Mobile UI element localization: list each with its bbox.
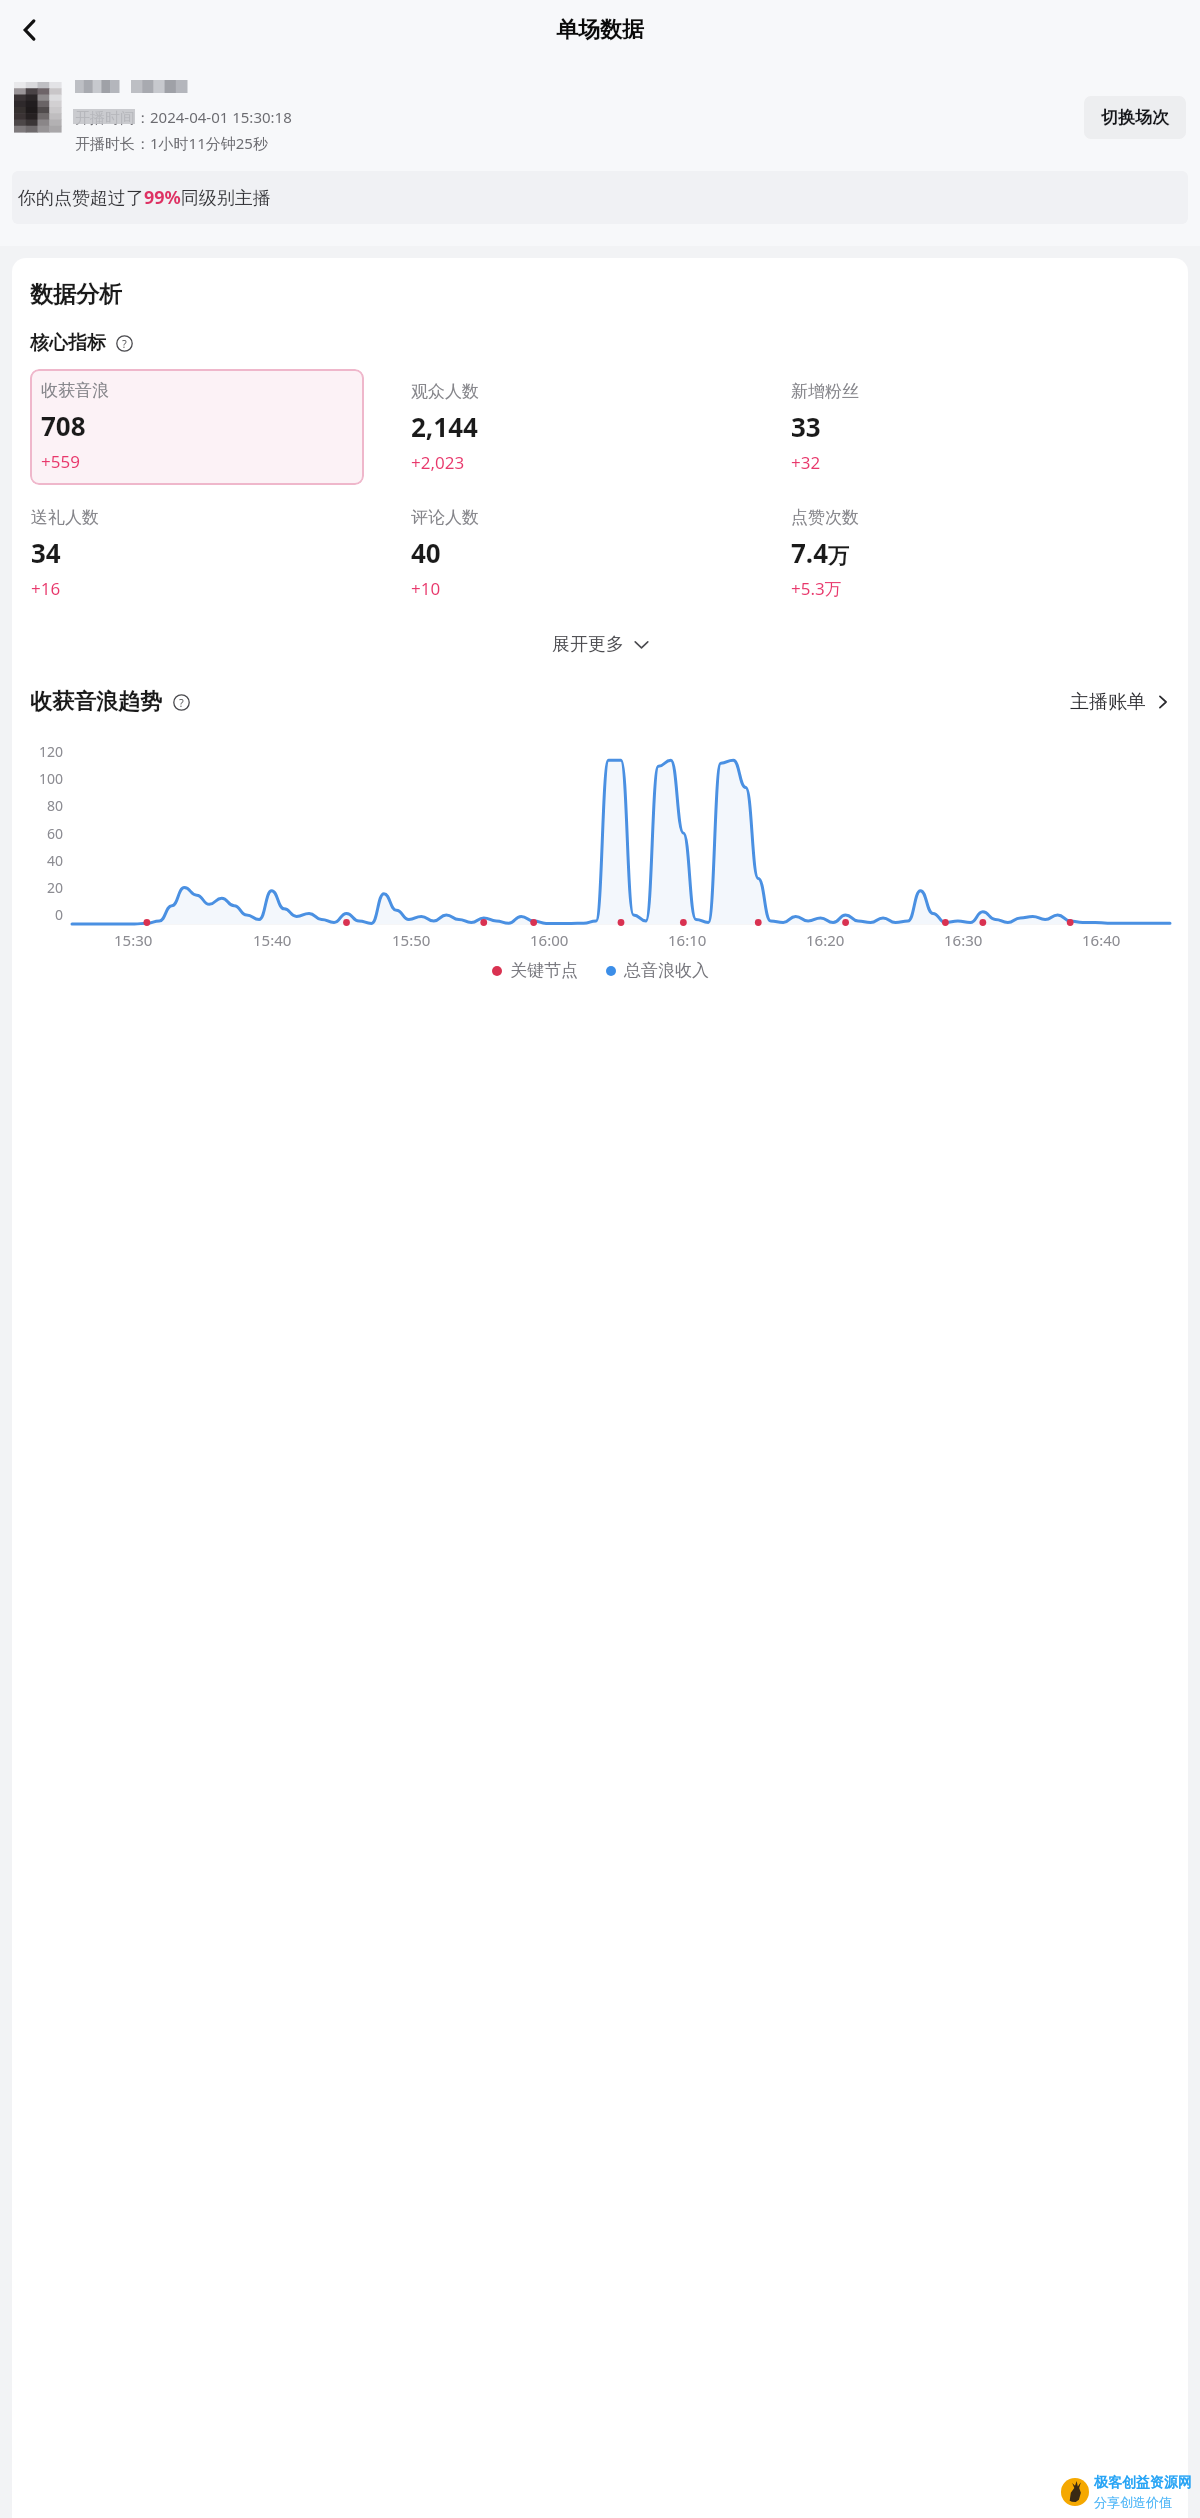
staticText: +5.3万	[791, 577, 842, 600]
button[interactable]: 点赞次数	[790, 495, 1170, 613]
staticText: 16:10	[668, 930, 707, 950]
staticText: 34	[31, 535, 61, 570]
button[interactable]: 切换场次	[1084, 96, 1186, 139]
staticText: 点赞次数	[791, 507, 859, 528]
staticText: +32	[791, 451, 821, 474]
staticText: 主播账单	[1070, 690, 1146, 714]
staticText: 收获音浪	[41, 380, 109, 401]
staticText: 总音浪收入	[624, 960, 709, 981]
staticText: +16	[31, 577, 61, 600]
button[interactable]: 收获音浪	[30, 369, 364, 485]
staticText: 0	[55, 905, 64, 924]
button[interactable]: 新增粉丝	[790, 369, 1170, 487]
staticText: 20	[47, 878, 64, 897]
staticText: 33	[791, 409, 821, 444]
staticText: ?	[122, 336, 127, 351]
button[interactable]: 主播账单	[1070, 684, 1170, 720]
staticText: 展开更多	[552, 633, 624, 656]
staticText: 开播时间：2024-04-01 15:30:18	[75, 107, 292, 127]
button[interactable]: Back	[6, 6, 54, 54]
button[interactable]: 展开更多	[538, 625, 663, 664]
staticText: 单场数据	[556, 16, 644, 44]
staticText: 数据分析	[30, 280, 122, 309]
staticText: 极客创益资源网	[1094, 2474, 1192, 2492]
staticText: 观众人数	[411, 381, 479, 402]
staticText: 708	[41, 408, 86, 443]
staticText: 16:00	[530, 930, 569, 950]
staticText: 15:50	[392, 930, 431, 950]
staticText: 你的点赞超过了99%同级别主播	[18, 185, 271, 210]
staticText: 15:30	[114, 930, 153, 950]
button[interactable]: Info	[170, 691, 192, 713]
staticText: 40	[411, 535, 441, 570]
staticText: 分享创造价值	[1094, 2494, 1172, 2510]
button[interactable]: Info	[113, 332, 135, 354]
button[interactable]: 观众人数	[410, 369, 790, 487]
staticText: 核心指标	[30, 331, 106, 355]
staticText: 新增粉丝	[791, 381, 859, 402]
staticText: 80	[47, 796, 64, 815]
staticText: 60	[47, 824, 64, 843]
staticText: 16:20	[806, 930, 845, 950]
staticText: ?	[179, 695, 184, 710]
staticText: 16:40	[1082, 930, 1121, 950]
staticText: 15:40	[253, 930, 292, 950]
button[interactable]: 送礼人数	[30, 495, 410, 613]
staticText: 40	[47, 851, 64, 870]
staticText: 切换场次	[1101, 107, 1169, 128]
staticText: 7.4万	[791, 535, 850, 570]
staticText: 收获音浪趋势	[30, 688, 162, 716]
staticText: 100	[39, 769, 64, 788]
staticText: 2,144	[411, 409, 478, 444]
staticText: 16:30	[944, 930, 983, 950]
staticText: 120	[39, 742, 64, 761]
staticText: +2,023	[411, 451, 465, 474]
button[interactable]: 评论人数	[410, 495, 790, 613]
staticText: +559	[41, 450, 80, 473]
staticText: 开播时长：1小时11分钟25秒	[75, 133, 268, 153]
staticText: +10	[411, 577, 441, 600]
staticText: 关键节点	[510, 960, 578, 981]
staticText: 评论人数	[411, 507, 479, 528]
staticText: 送礼人数	[31, 507, 99, 528]
